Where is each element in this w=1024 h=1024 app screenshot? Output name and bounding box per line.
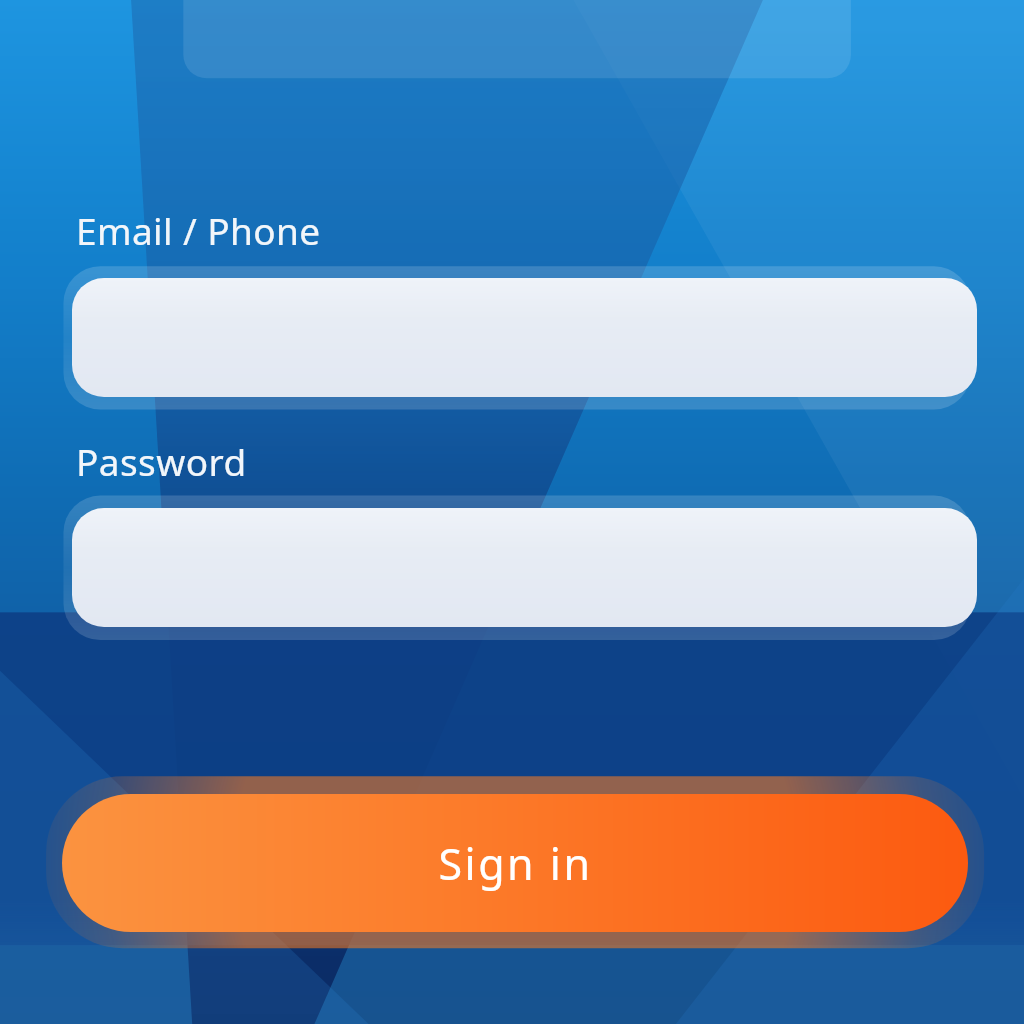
button[interactable]: Text field: [72, 278, 977, 397]
staticText: Email / Phone: [76, 205, 321, 255]
staticText: Password: [76, 436, 247, 486]
button[interactable]: Text field: [72, 508, 977, 627]
button[interactable]: Sign in: [62, 794, 968, 932]
staticText: Sign in: [438, 834, 593, 893]
